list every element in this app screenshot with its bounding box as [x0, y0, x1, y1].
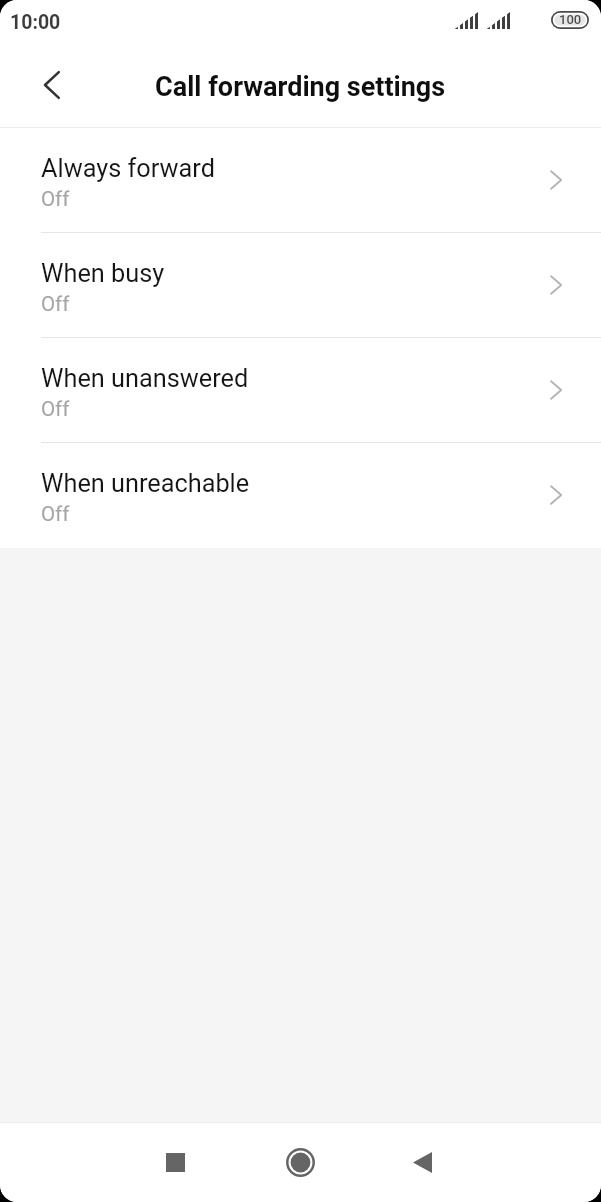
staticText: When busy [41, 259, 165, 289]
button[interactable]: When unreachable [0, 443, 601, 548]
staticText: 100 [559, 12, 582, 27]
button[interactable]: When unanswered [0, 338, 601, 443]
staticText: Call forwarding settings [155, 71, 446, 103]
button[interactable]: Back [23, 56, 81, 114]
staticText: When unreachable [41, 469, 250, 499]
button[interactable]: When busy [0, 233, 601, 338]
staticText: 10:00 [10, 11, 61, 34]
button[interactable]: Home [272, 1134, 328, 1190]
staticText: Off [41, 292, 70, 316]
staticText: Always forward [41, 154, 215, 184]
staticText: Off [41, 502, 70, 526]
button[interactable]: Recent apps [147, 1134, 203, 1190]
staticText: Off [41, 397, 70, 421]
button[interactable]: Always forward [0, 128, 601, 233]
staticText: Off [41, 187, 70, 211]
staticText: When unanswered [41, 364, 249, 394]
button[interactable]: Back [394, 1134, 450, 1190]
